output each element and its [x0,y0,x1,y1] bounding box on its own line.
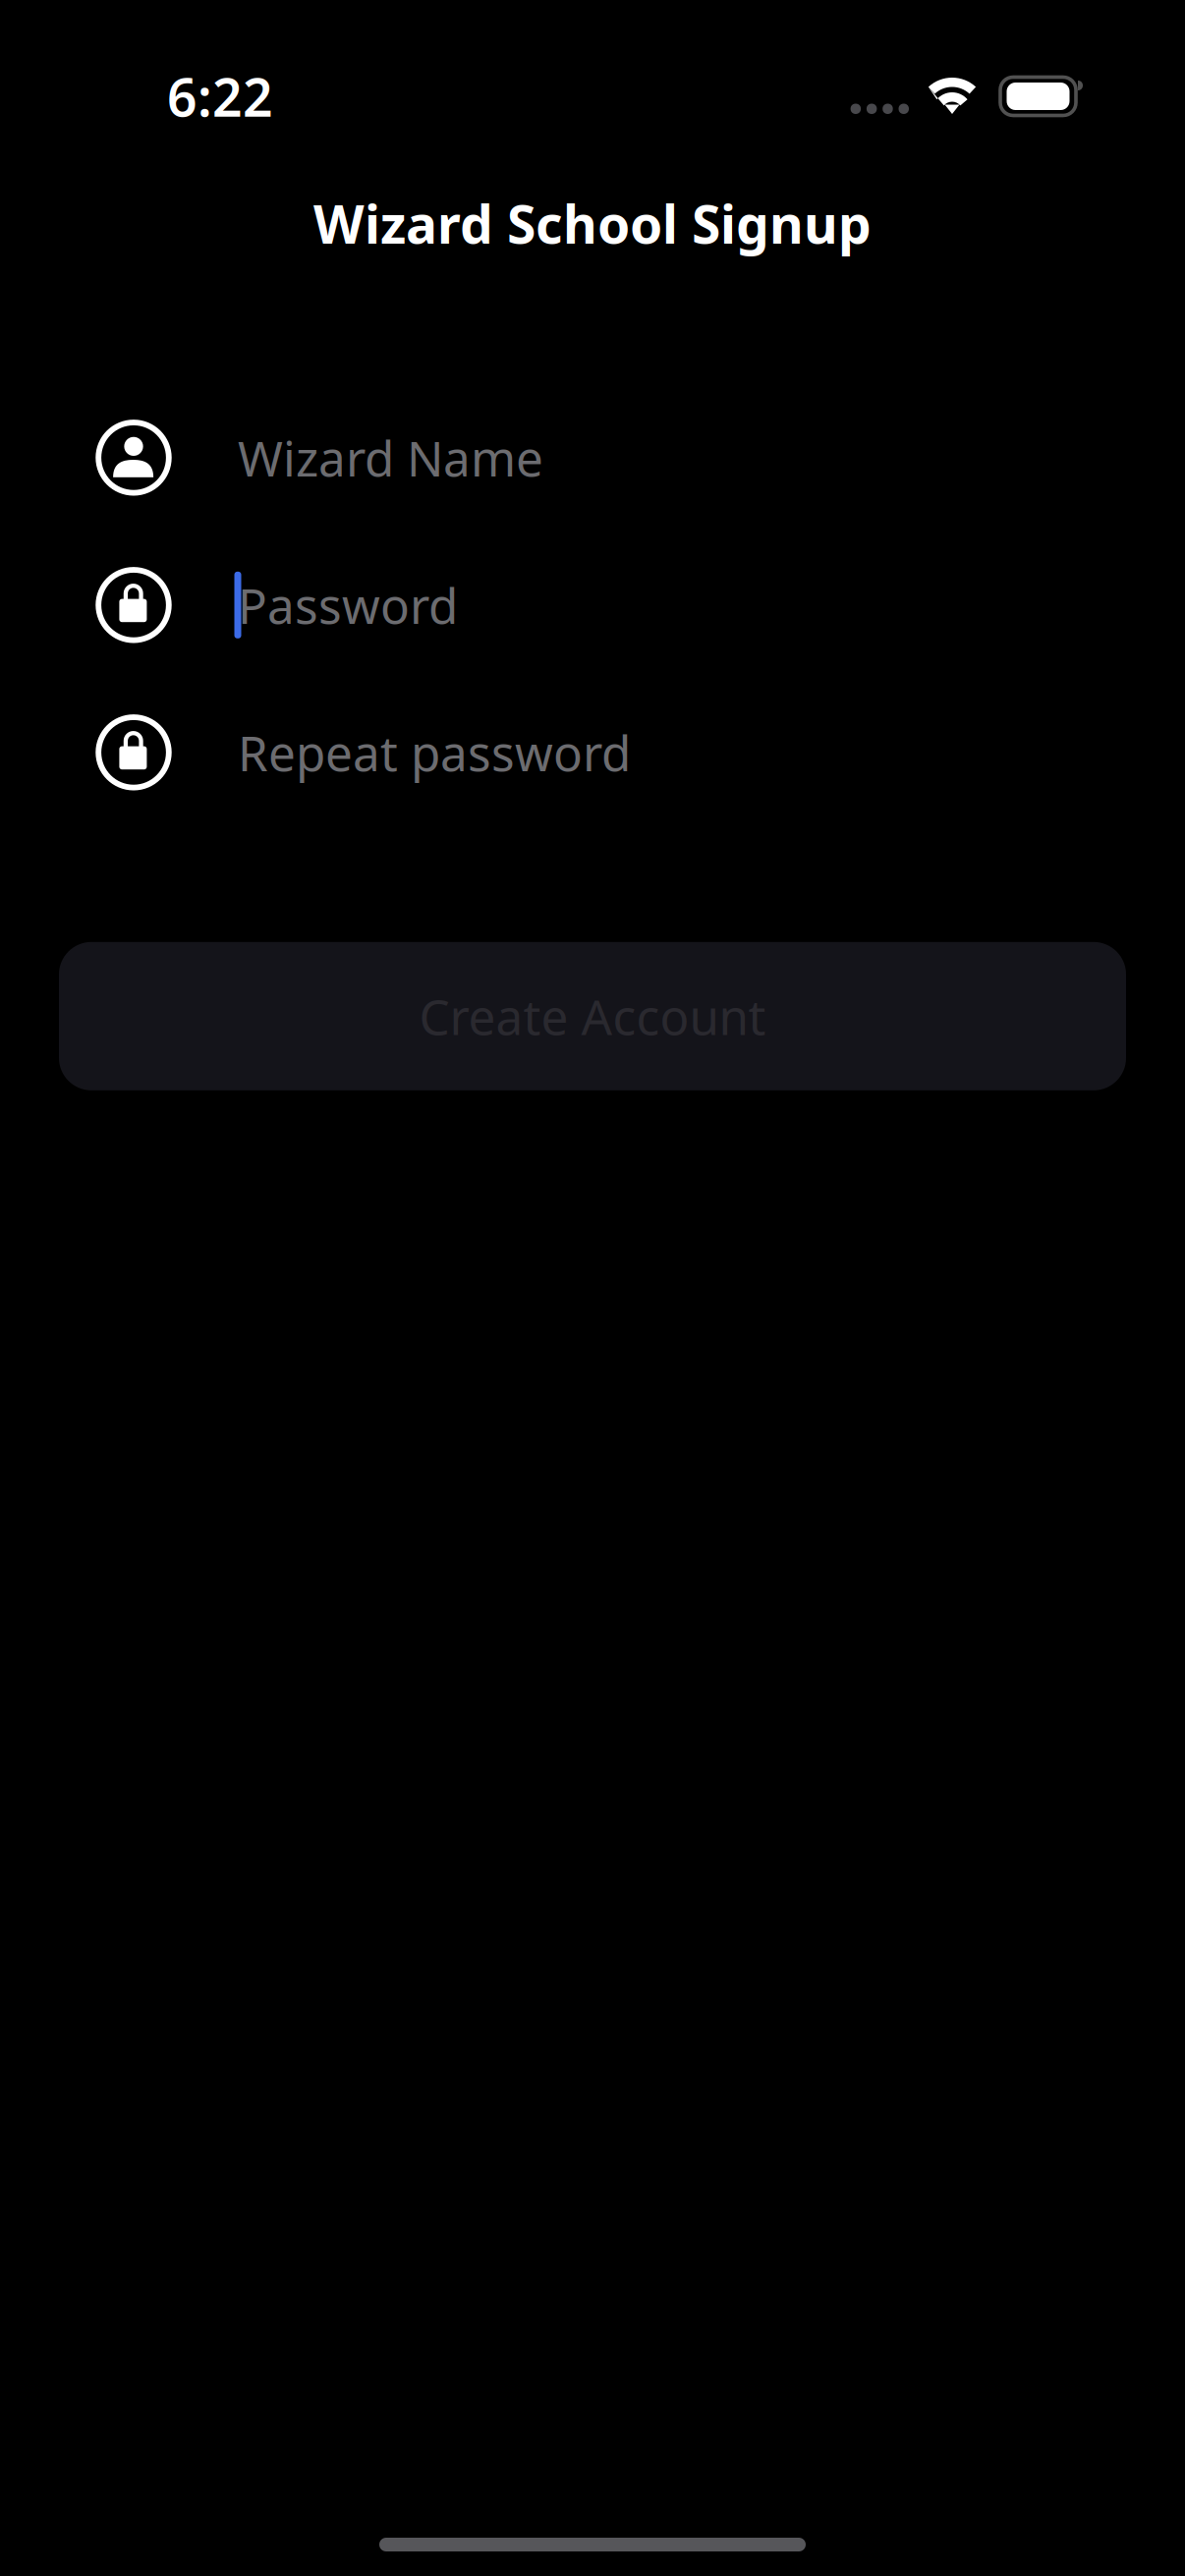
button[interactable]: Password [95,531,1126,679]
button[interactable]: Repeat password [95,679,1126,826]
staticText: 6:22 [167,62,273,131]
staticText: Password [238,573,458,637]
staticText: Wizard Name [238,426,543,490]
button[interactable]: Wizard Name [95,384,1126,531]
staticText: Create Account [419,984,766,1048]
staticText: Repeat password [238,720,631,785]
button[interactable]: Create Account [59,942,1126,1090]
staticText: Wizard School Signup [313,189,872,258]
